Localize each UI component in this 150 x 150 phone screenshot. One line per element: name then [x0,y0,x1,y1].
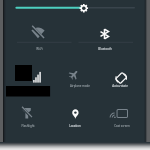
button[interactable]: Location [54,100,96,134]
staticText: Bluetooth [98,47,112,51]
staticText: Wi-Fi [36,47,43,51]
button[interactable]: Mobile data [10,60,52,94]
button[interactable]: Airplane mode [54,60,96,94]
button[interactable]: Flashlight [10,100,52,134]
staticText: Auto-rotate [112,84,128,88]
button[interactable]: Wi-Fi [10,21,70,42]
button[interactable]: Auto-rotate [98,60,140,94]
button[interactable]: Brightness [8,1,138,17]
button[interactable]: Bluetooth [76,21,136,42]
staticText: Cast screen [114,124,130,128]
staticText: Flashlight [21,124,35,128]
staticText: Location [69,124,81,128]
button[interactable]: Cast screen [98,100,140,134]
staticText: Airplane mode [70,84,90,88]
